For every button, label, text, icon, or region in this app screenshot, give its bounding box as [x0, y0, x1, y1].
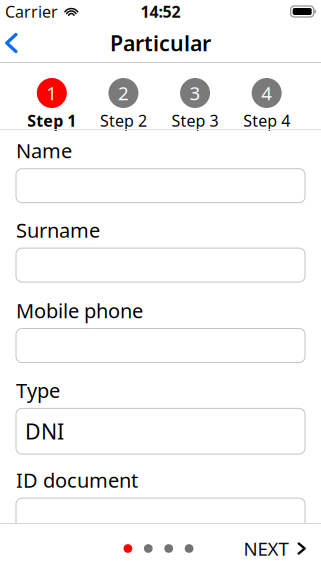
staticText: DNI [25, 417, 64, 445]
staticText: Step 3 [172, 110, 219, 131]
button[interactable]: Back [0, 23, 30, 63]
button[interactable] [16, 248, 305, 282]
staticText: Mobile phone [16, 297, 143, 324]
staticText: ID document [16, 467, 138, 493]
staticText: Particular [110, 29, 211, 57]
staticText: 1 [46, 81, 57, 105]
staticText: Step 4 [243, 110, 290, 131]
staticText: Step 2 [100, 110, 147, 131]
button[interactable]: 3 [159, 78, 231, 131]
button[interactable]: 2 [88, 78, 159, 131]
staticText: Type [16, 377, 60, 404]
staticText: Carrier [5, 1, 58, 22]
staticText: 14:52 [140, 1, 180, 22]
button[interactable] [16, 328, 305, 362]
button[interactable] [16, 498, 305, 532]
staticText: 4 [261, 81, 272, 105]
button[interactable]: NEXT [229, 524, 321, 572]
staticText: 2 [118, 81, 129, 105]
staticText: Surname [16, 217, 100, 243]
button[interactable] [16, 169, 305, 203]
button[interactable]: 4 [231, 78, 302, 131]
staticText: NEXT [243, 536, 288, 561]
button[interactable]: DNI [16, 408, 305, 454]
staticText: Step 1 [27, 110, 76, 131]
button[interactable]: 1 [16, 78, 88, 131]
staticText: Name [16, 137, 72, 164]
staticText: 3 [190, 81, 201, 105]
